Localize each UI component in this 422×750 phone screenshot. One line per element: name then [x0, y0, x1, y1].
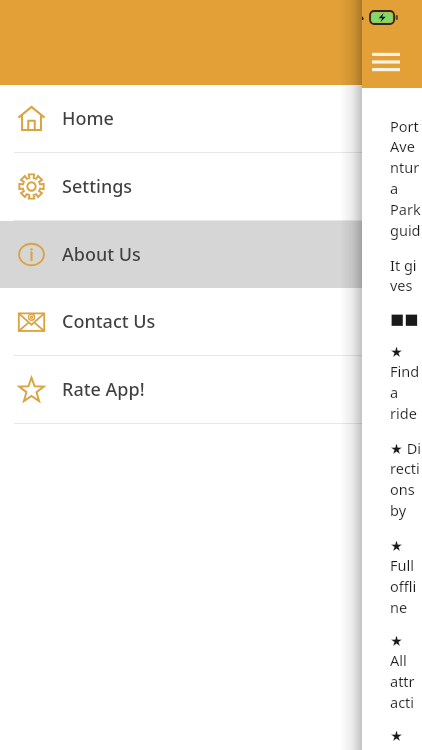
staticText: It gives you the location. [390, 255, 422, 296]
staticText: Rate App! [62, 377, 145, 402]
staticText: ★ Directions by Name, straight to Maps. [390, 438, 422, 521]
staticText: ★ Find a ride fast: tap it to open the L… [390, 341, 422, 424]
staticText: ■■■■■■■■ [390, 310, 422, 327]
button[interactable]: Open navigation menu [368, 44, 404, 80]
staticText: About Us [62, 242, 141, 267]
button[interactable]: Contact Us [0, 288, 362, 355]
staticText: ★ All attractions listed [390, 630, 422, 713]
staticText: ★ Full offline park map [390, 535, 422, 618]
staticText: Contact Us [62, 309, 156, 334]
staticText: Port Aventura Park guide: find your curr… [390, 116, 422, 241]
button[interactable]: Settings [0, 153, 362, 220]
button[interactable]: About Us [0, 221, 362, 288]
button[interactable]: Home [0, 85, 362, 152]
staticText: Home [62, 106, 114, 131]
staticText: Settings [62, 174, 133, 199]
button[interactable]: Rate App! [0, 356, 362, 423]
staticText: ★ Opening hours [390, 725, 422, 750]
